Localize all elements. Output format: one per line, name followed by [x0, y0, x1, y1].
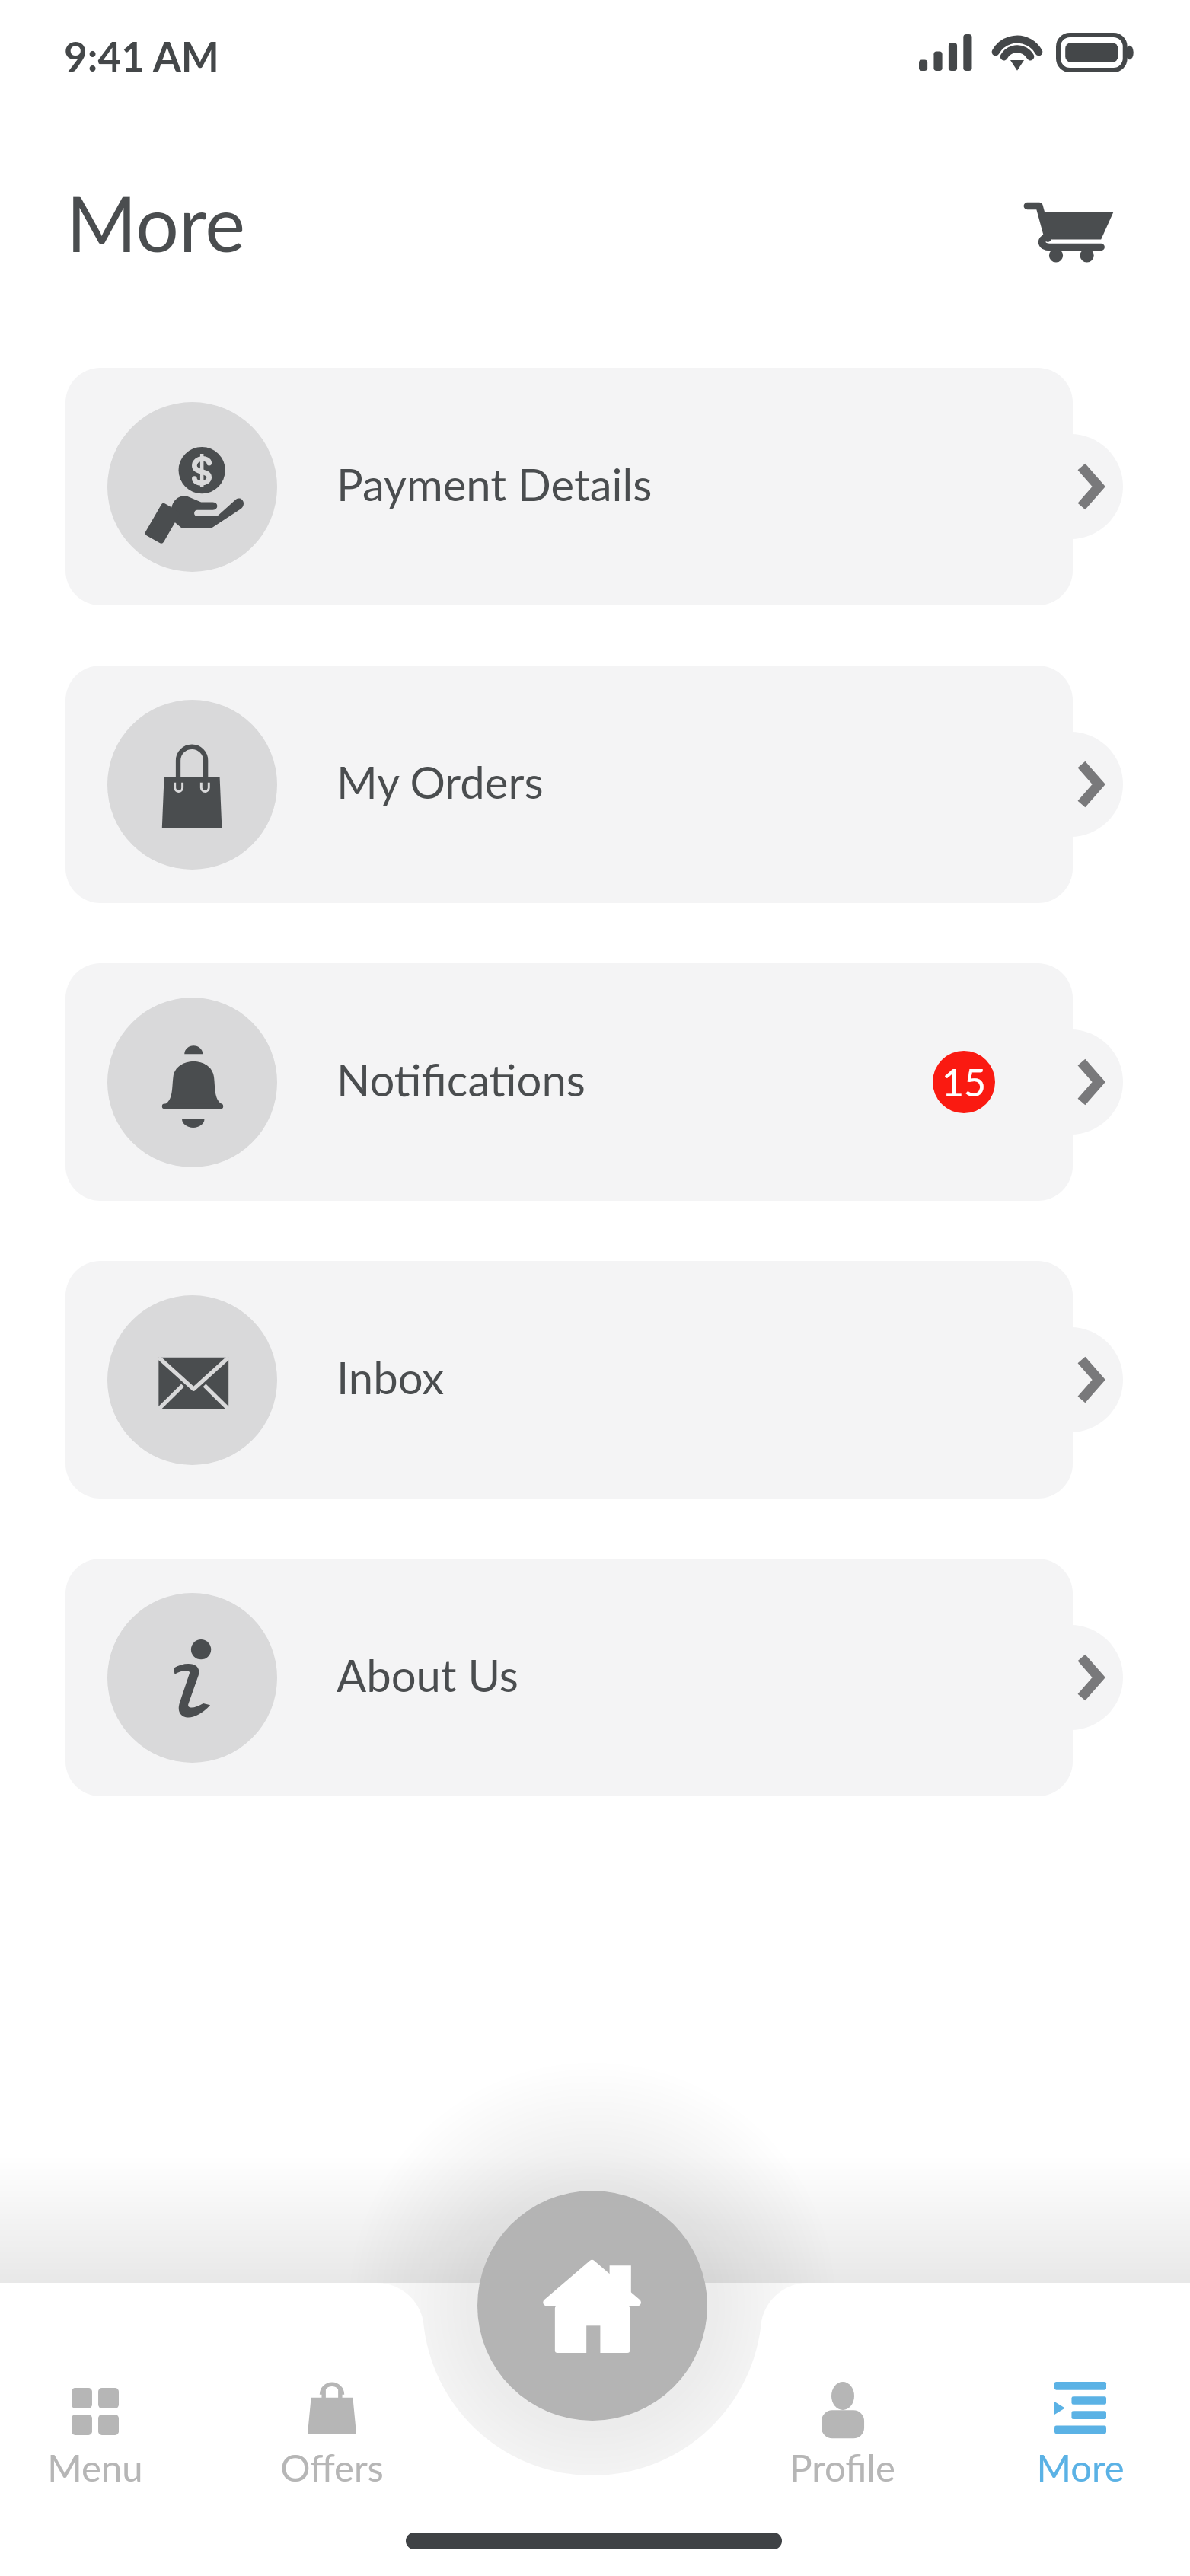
staticText: 9:41 AM	[64, 32, 219, 81]
button[interactable]: My Orders	[65, 666, 1123, 903]
button[interactable]: Profile	[751, 2374, 933, 2505]
button[interactable]: More	[989, 2374, 1172, 2505]
button[interactable]: Offers	[241, 2374, 423, 2505]
staticText: 15	[942, 1059, 987, 1105]
staticText: Payment Details	[337, 458, 652, 511]
staticText: Inbox	[337, 1351, 445, 1404]
button[interactable]: Inbox	[65, 1261, 1123, 1499]
button[interactable]: Cart	[1013, 174, 1127, 288]
button[interactable]: About Us	[65, 1559, 1123, 1796]
staticText: Profile	[790, 2445, 895, 2490]
staticText: About Us	[337, 1649, 518, 1702]
button[interactable]: Home	[477, 2191, 707, 2421]
button[interactable]: Payment Details	[65, 368, 1123, 605]
staticText: Offers	[280, 2445, 384, 2490]
staticText: More	[1036, 2445, 1125, 2490]
staticText: More	[66, 177, 246, 268]
staticText: Notifications	[337, 1053, 585, 1106]
staticText: Menu	[47, 2445, 143, 2490]
button[interactable]: Menu	[4, 2374, 187, 2505]
staticText: My Orders	[337, 755, 544, 809]
button[interactable]: Notifications	[65, 963, 1123, 1201]
